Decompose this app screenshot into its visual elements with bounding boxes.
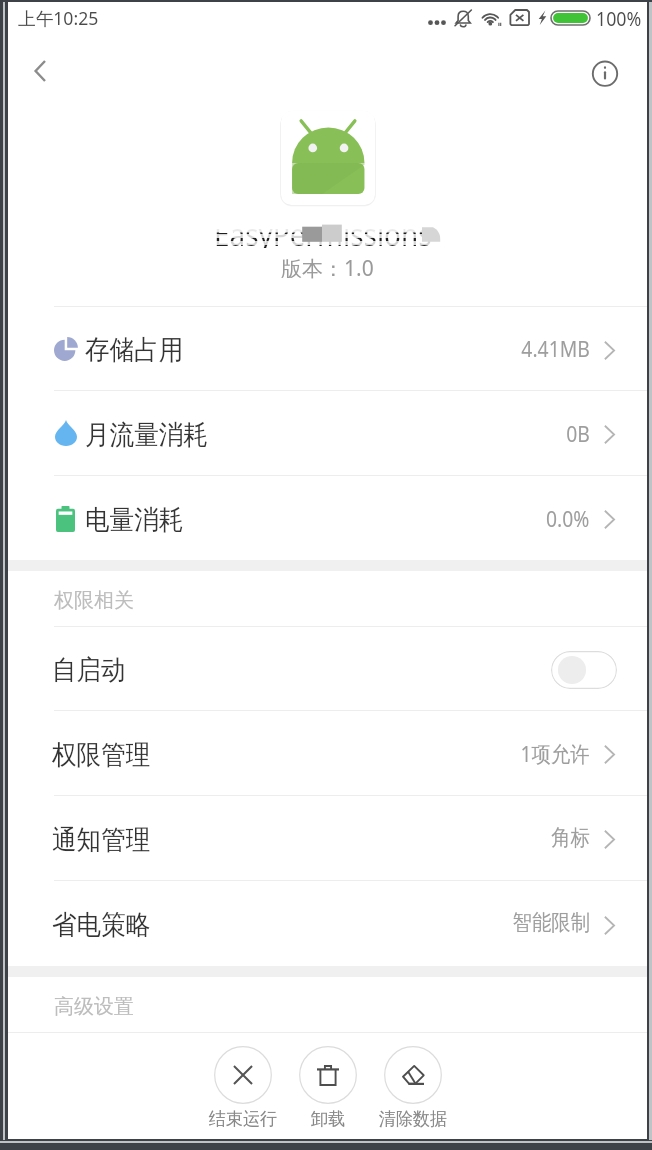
button[interactable]: 清除数据 (370, 1032, 455, 1131)
button[interactable]: 卸载 (285, 1032, 370, 1131)
button[interactable]: 自启动 (8, 626, 647, 710)
staticText: 智能限制 (513, 909, 590, 937)
button[interactable]: 存储占用 (8, 306, 647, 390)
button[interactable]: 月流量消耗 (8, 390, 647, 475)
staticText: 清除数据 (379, 1108, 447, 1131)
staticText: EasyPermissions (214, 214, 432, 254)
button[interactable]: Back (13, 54, 57, 98)
staticText: 省电策略 (52, 908, 150, 942)
staticText: 月流量消耗 (85, 418, 208, 452)
staticText: 存储占用 (85, 333, 183, 367)
staticText: 角标 (551, 824, 590, 852)
staticText: 结束运行 (209, 1108, 277, 1131)
staticText: 自启动 (52, 653, 126, 687)
button[interactable]: 权限管理 (8, 710, 647, 795)
button[interactable]: 通知管理 (8, 795, 647, 880)
staticText: 上午10:25 (18, 6, 99, 31)
staticText: 高级设置 (54, 994, 134, 1019)
staticText: 权限相关 (54, 588, 134, 613)
staticText: 0B (566, 418, 590, 448)
button[interactable]: 省电策略 (8, 880, 647, 966)
staticText: 4.41MB (521, 333, 590, 363)
staticText: 卸载 (311, 1108, 345, 1131)
button[interactable]: App info (570, 58, 614, 102)
button[interactable]: 结束运行 (200, 1032, 285, 1131)
button[interactable]: 电量消耗 (8, 475, 647, 560)
staticText: 通知管理 (52, 823, 150, 857)
staticText: 100% (596, 5, 641, 32)
staticText: 权限管理 (52, 738, 150, 772)
button[interactable]: Auto start toggle (551, 651, 617, 689)
staticText: 1项允许 (520, 738, 590, 768)
staticText: 版本：1.0 (281, 254, 374, 283)
staticText: 0.0% (546, 503, 590, 533)
staticText: 电量消耗 (85, 503, 183, 537)
